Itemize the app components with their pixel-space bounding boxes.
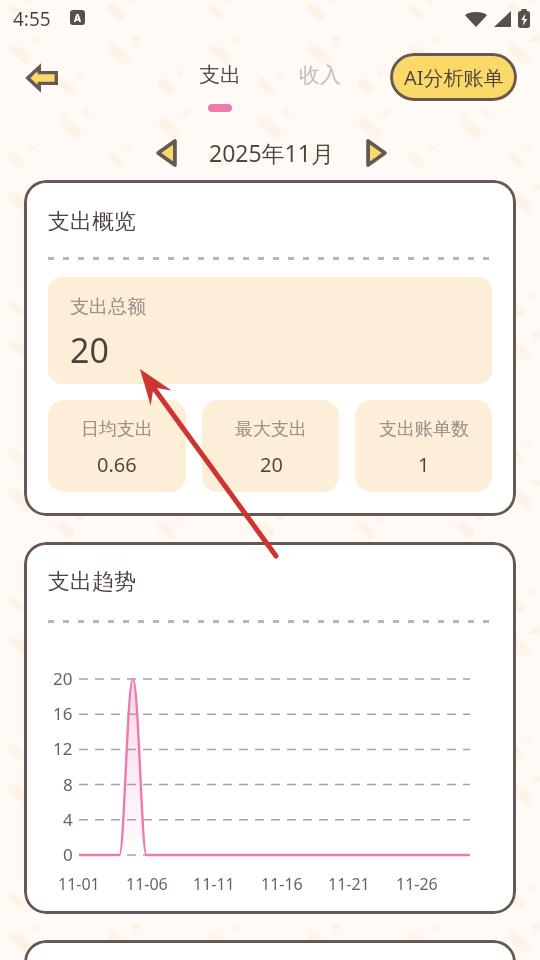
staticText: 1 [418, 451, 430, 478]
staticText: 日均支出 [81, 418, 153, 441]
staticText: 0 [63, 843, 73, 866]
button[interactable]: Next month [356, 133, 397, 173]
staticText: 11-16 [261, 873, 303, 895]
staticText: 4 [63, 808, 73, 831]
staticText: 最大支出 [235, 418, 307, 441]
staticText: 12 [53, 737, 73, 760]
staticText: 16 [53, 702, 73, 725]
staticText: 8 [63, 773, 73, 796]
staticText: 11-01 [58, 873, 100, 895]
staticText: AI分析账单 [404, 64, 504, 91]
staticText: 20 [53, 667, 73, 690]
staticText: 4:55 [13, 6, 51, 32]
button[interactable] [24, 940, 516, 960]
staticText: 收入 [299, 62, 341, 88]
staticText: 支出账单数 [379, 418, 469, 441]
staticText: A [74, 11, 81, 25]
staticText: 0.66 [97, 451, 137, 478]
button[interactable]: 收入 [285, 62, 355, 112]
staticText: 11-21 [328, 873, 370, 895]
staticText: 支出趋势 [48, 568, 136, 596]
button[interactable]: AI分析账单 [390, 53, 517, 101]
staticText: 20 [260, 451, 283, 478]
staticText: 11-26 [396, 873, 438, 895]
button[interactable]: 支出账单数 [355, 400, 492, 492]
button[interactable]: Previous month [146, 133, 187, 173]
staticText: 支出 [199, 62, 241, 88]
staticText: 20 [70, 327, 109, 373]
staticText: 2025年11月 [209, 137, 334, 168]
staticText: 支出概览 [48, 208, 136, 236]
button[interactable]: Back [16, 56, 68, 100]
staticText: 11-06 [126, 873, 168, 895]
button[interactable]: 日均支出 [48, 400, 186, 492]
button[interactable]: 支出 [185, 62, 255, 112]
button[interactable]: 最大支出 [202, 400, 339, 492]
staticText: 支出总额 [70, 295, 146, 319]
staticText: 11-11 [193, 873, 235, 895]
